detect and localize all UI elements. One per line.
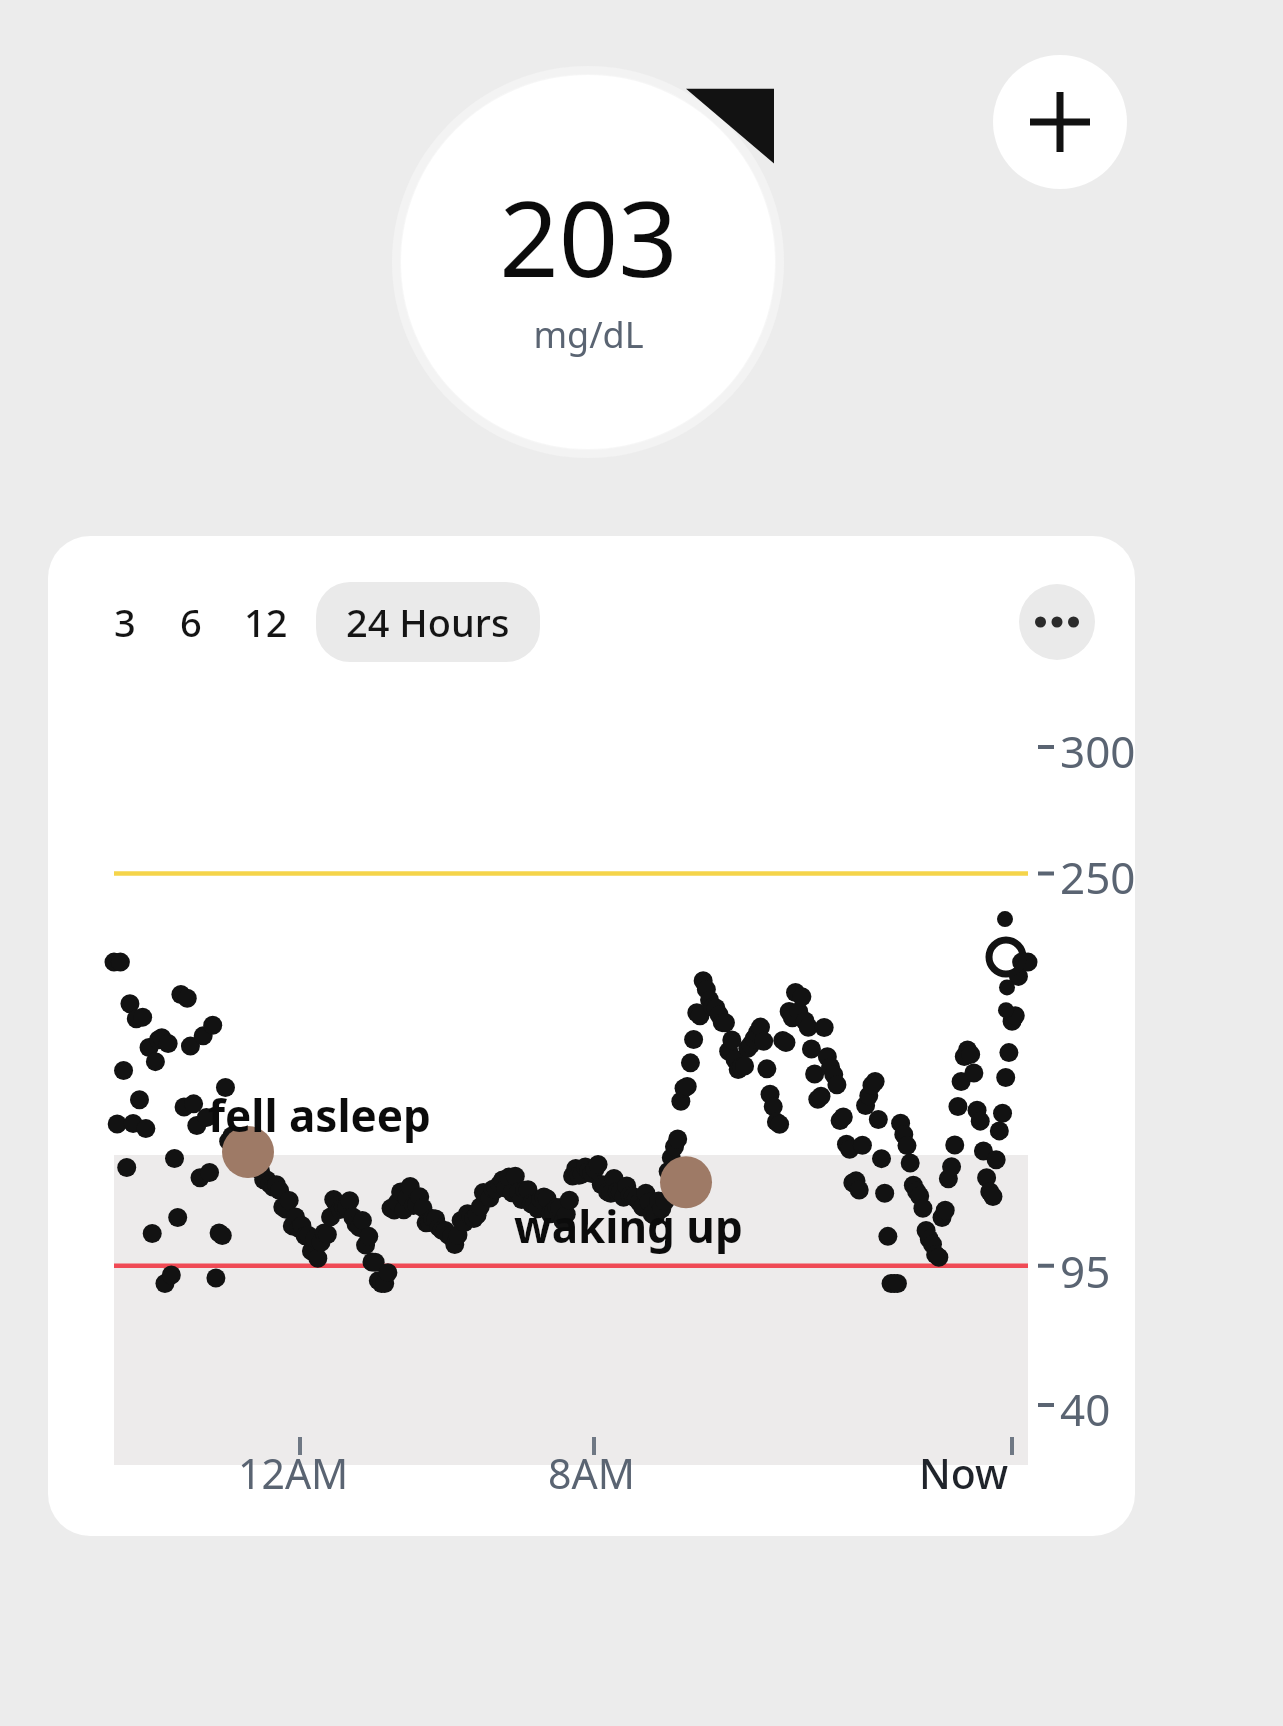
staticText: 12AM bbox=[238, 1445, 349, 1501]
staticText: 203 bbox=[499, 166, 678, 308]
staticText: mg/dL bbox=[533, 310, 644, 359]
button[interactable]: 203 bbox=[401, 75, 775, 449]
staticText: 3 bbox=[114, 596, 136, 648]
button[interactable]: 3 bbox=[106, 582, 144, 662]
button[interactable]: 12 bbox=[236, 582, 296, 662]
button[interactable]: 6 bbox=[172, 582, 210, 662]
button[interactable]: Add entry bbox=[993, 55, 1127, 189]
button[interactable]: 24 Hours bbox=[316, 582, 540, 662]
button[interactable]: More options bbox=[1019, 584, 1095, 660]
staticText: Now bbox=[919, 1445, 1009, 1501]
staticText: 300 bbox=[1060, 721, 1135, 781]
staticText: waking up bbox=[514, 1196, 743, 1256]
staticText: fell asleep bbox=[208, 1085, 431, 1145]
staticText: 12 bbox=[244, 596, 288, 648]
staticText: 95 bbox=[1060, 1241, 1111, 1301]
staticText: 40 bbox=[1060, 1379, 1111, 1439]
staticText: 250 bbox=[1060, 847, 1135, 907]
staticText: 24 Hours bbox=[346, 596, 510, 648]
staticText: 6 bbox=[180, 596, 202, 648]
staticText: 8AM bbox=[548, 1445, 635, 1501]
